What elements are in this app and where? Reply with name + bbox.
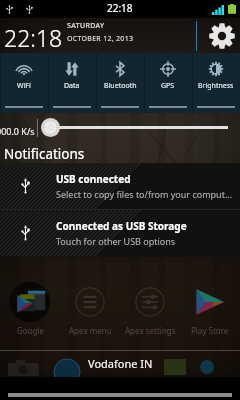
button[interactable]: Data	[48, 53, 96, 113]
button[interactable]: GPS	[144, 53, 192, 113]
button[interactable]: Bluetooth	[96, 53, 144, 113]
button[interactable]: WiFi	[0, 53, 48, 113]
staticText: Play Store	[191, 325, 229, 336]
button[interactable]: Connected as USB Storage	[0, 210, 240, 256]
staticText: Google	[17, 325, 44, 336]
button[interactable]: Brightness slider	[41, 118, 60, 137]
staticText: OCTOBER 12, 2013	[67, 34, 134, 44]
staticText: SATURDAY	[67, 21, 105, 31]
staticText: Data	[64, 81, 80, 91]
button[interactable]: Google	[4, 280, 56, 336]
staticText: Connected as USB Storage	[56, 219, 187, 233]
staticText: GPS	[161, 81, 175, 91]
staticText: Brightness	[198, 81, 234, 91]
staticText: 22:18	[107, 1, 133, 15]
staticText: WiFi	[17, 81, 31, 91]
staticText: Vodafone IN	[88, 356, 153, 371]
button[interactable]: Settings	[196, 18, 240, 53]
staticText: Touch for other USB options	[56, 235, 176, 247]
staticText: USB connected	[56, 172, 131, 186]
staticText: 22:18	[4, 22, 63, 53]
staticText: Notifications	[4, 145, 85, 163]
staticText: Select to copy files to/from your comput…	[56, 188, 233, 200]
button[interactable]: Brightness	[192, 53, 240, 113]
button[interactable]: USB connected	[0, 163, 240, 209]
staticText: 000.0 K/s	[0, 125, 35, 137]
button[interactable]: Apex settings	[124, 280, 176, 336]
button[interactable]: Play Store	[184, 280, 236, 336]
staticText: Apex menu	[69, 325, 112, 336]
staticText: Apex settings	[125, 325, 176, 336]
staticText: Bluetooth	[104, 81, 137, 91]
button[interactable]: Apex menu	[64, 280, 116, 336]
